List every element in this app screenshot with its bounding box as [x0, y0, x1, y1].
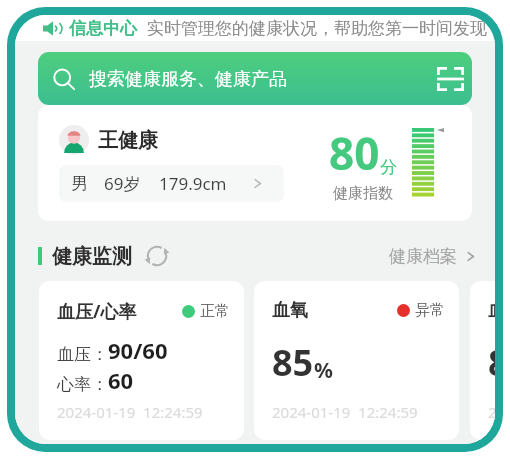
button[interactable]: 血压/心率: [39, 281, 244, 440]
staticText: 分: [380, 157, 397, 178]
staticText: 王健康: [98, 128, 158, 153]
staticText: 85: [272, 338, 314, 387]
staticText: 异常: [415, 301, 445, 320]
staticText: %: [314, 356, 333, 385]
button[interactable]: 搜索健康服务、健康产品: [38, 52, 472, 105]
button[interactable]: 信息中心: [15, 15, 495, 41]
staticText: 2024-01-19 12:24:59: [57, 402, 203, 422]
staticText: 血氧: [272, 299, 308, 322]
staticText: 2024-01-19 12:24:59: [272, 402, 418, 422]
staticText: 血压/心率: [57, 299, 137, 324]
staticText: 80: [329, 123, 380, 183]
button[interactable]: 血糖: [470, 281, 495, 440]
staticText: 男: [71, 173, 88, 194]
button[interactable]: 血氧: [254, 281, 459, 440]
staticText: 90/60: [108, 335, 168, 365]
staticText: 健康档案: [389, 246, 457, 267]
staticText: 实时管理您的健康状况，帮助您第一时间发现: [147, 18, 487, 39]
staticText: 信息中心: [69, 18, 137, 39]
staticText: 搜索健康服务、健康产品: [89, 68, 287, 91]
staticText: 69岁: [104, 172, 141, 195]
button[interactable]: 王健康: [38, 105, 472, 221]
staticText: 健康监测: [52, 244, 132, 269]
button[interactable]: Refresh: [143, 242, 171, 270]
button[interactable]: 健康档案: [389, 246, 477, 267]
staticText: 60: [108, 365, 134, 395]
button[interactable]: Scan: [437, 67, 464, 91]
staticText: 正常: [200, 302, 230, 321]
staticText: 血压：: [57, 344, 108, 365]
staticText: 179.9cm: [159, 172, 227, 195]
staticText: 2024-01-19 12:24:59: [488, 402, 495, 422]
staticText: 心率：: [57, 374, 108, 395]
staticText: 8: [488, 338, 495, 387]
staticText: 健康指数: [333, 184, 393, 203]
staticText: 血糖: [488, 299, 495, 322]
